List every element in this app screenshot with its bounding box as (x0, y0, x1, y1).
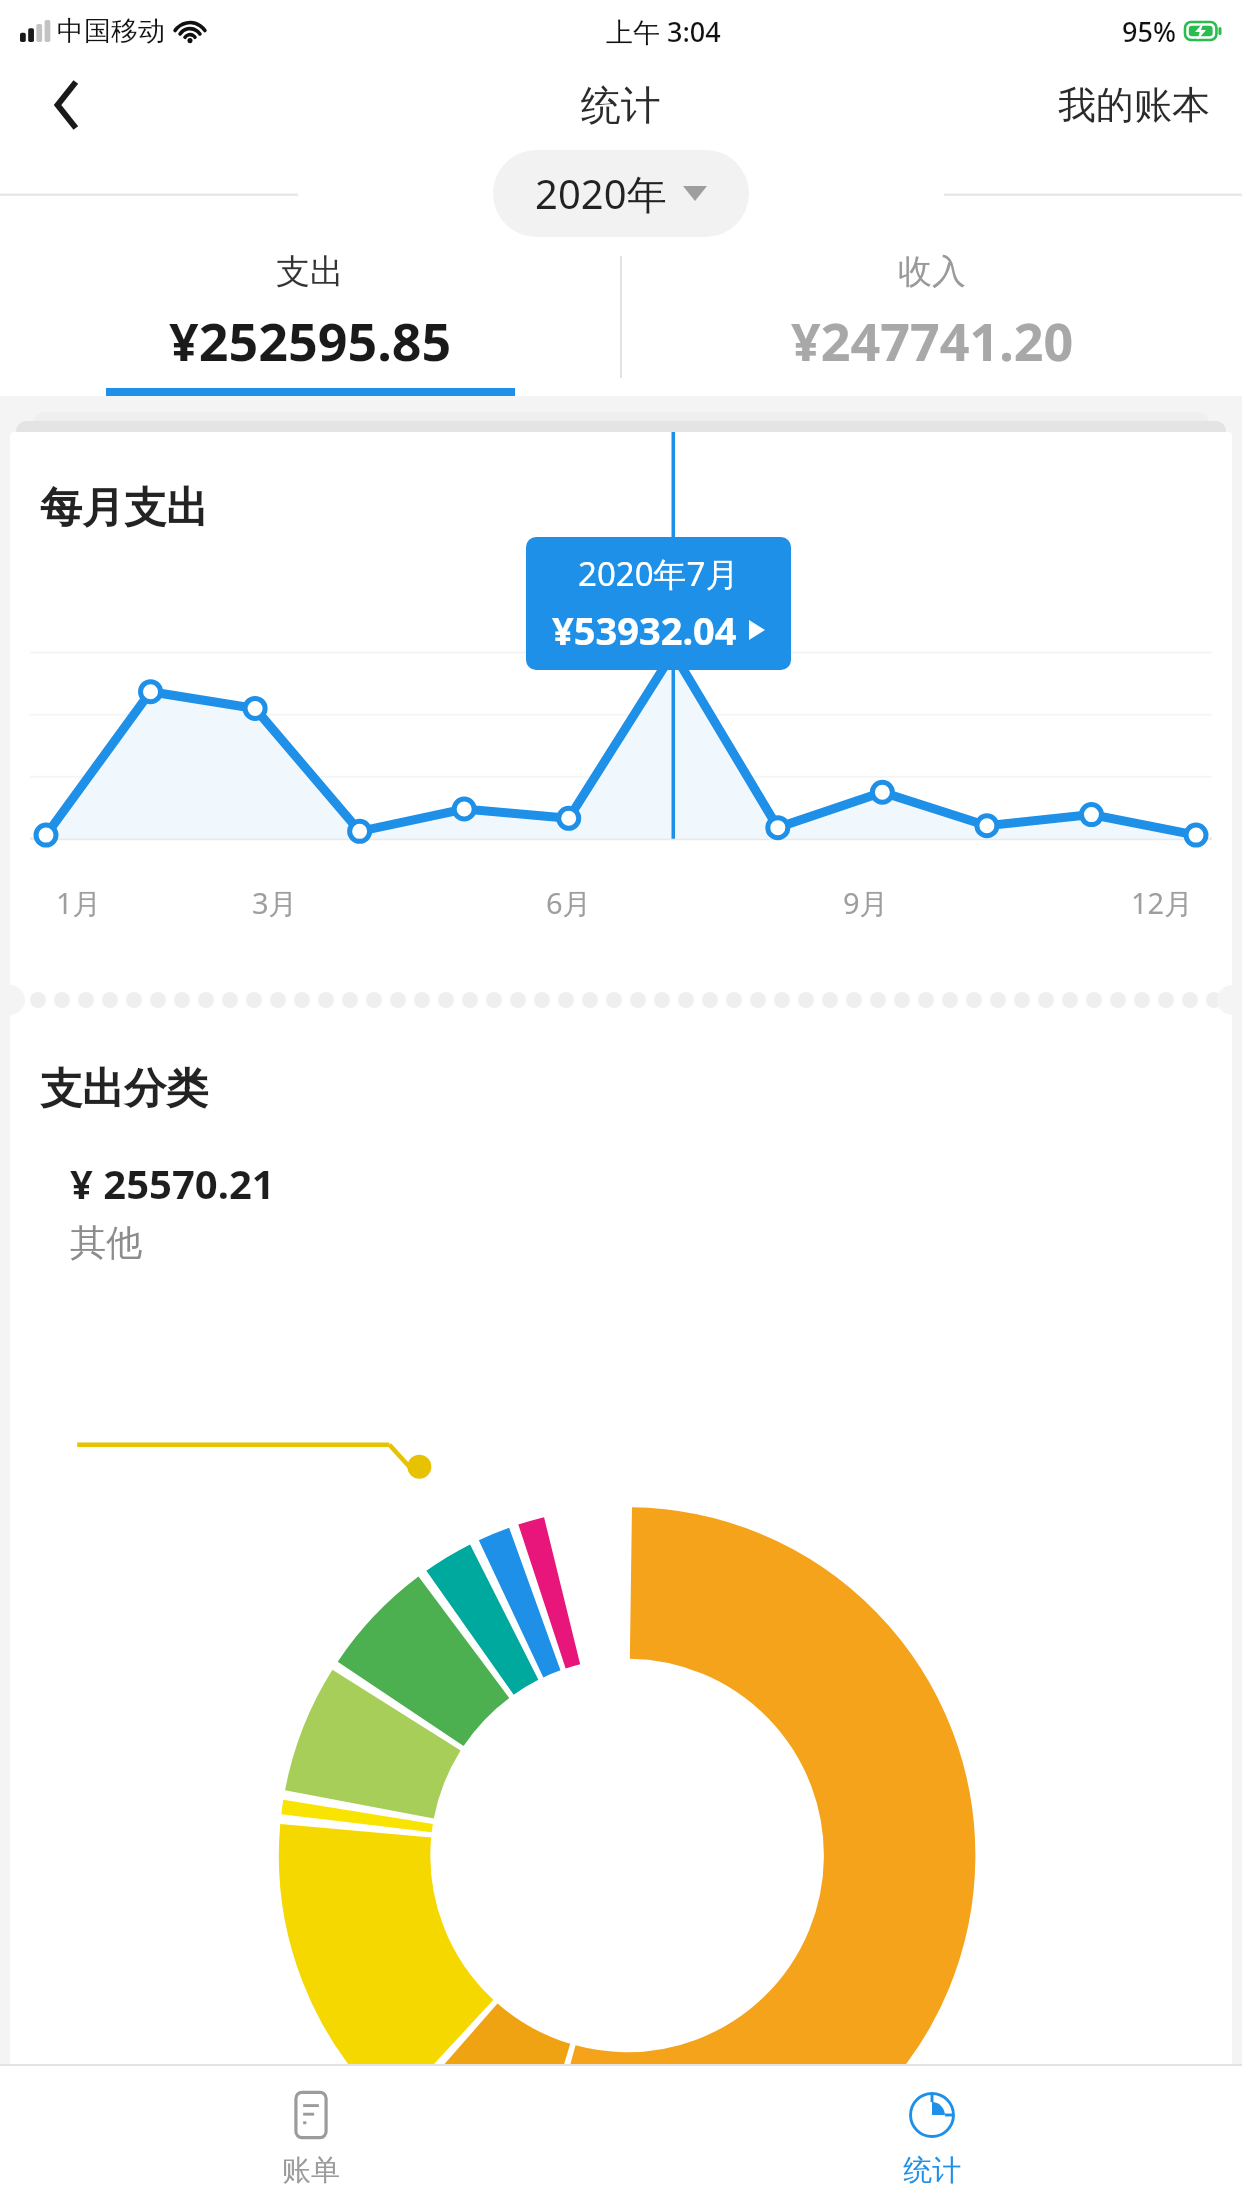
staticText: 2020年7月 (578, 551, 739, 596)
staticText: 1月 (56, 883, 102, 923)
staticText: ¥ 25570.21 (70, 1156, 275, 1210)
staticText: 支出 (276, 250, 344, 293)
staticText: 6月 (546, 883, 592, 923)
staticText: 9月 (843, 883, 889, 923)
button[interactable]: 统计 (621, 2066, 1242, 2208)
staticText: 12月 (1131, 883, 1194, 923)
staticText: 中国移动 (57, 14, 165, 48)
button[interactable]: 收入 (622, 238, 1242, 396)
staticText: ¥247741.20 (791, 305, 1074, 376)
staticText: 其他 (70, 1220, 142, 1265)
staticText: 统计 (903, 2152, 961, 2189)
button[interactable]: 账单 (0, 2066, 621, 2208)
staticText: 统计 (581, 80, 661, 130)
staticText: 3月 (252, 883, 298, 923)
staticText: 每月支出 (40, 482, 208, 535)
staticText: 95% (1122, 13, 1176, 50)
button[interactable]: 我的账本 (1050, 71, 1218, 139)
button[interactable]: Back (0, 62, 135, 148)
staticText: ¥53932.04 (552, 604, 737, 656)
staticText: 收入 (898, 250, 966, 293)
staticText: 支出分类 (40, 1063, 208, 1116)
button[interactable]: 支出 (0, 238, 620, 396)
button[interactable]: 2020年7月 (526, 537, 791, 670)
staticText: 账单 (282, 2152, 340, 2189)
staticText: 2020年 (535, 166, 667, 221)
staticText: ¥252595.85 (169, 305, 452, 376)
staticText: 我的账本 (1058, 81, 1210, 129)
staticText: 上午 3:04 (606, 13, 721, 50)
button[interactable]: 2020年 (493, 150, 749, 237)
